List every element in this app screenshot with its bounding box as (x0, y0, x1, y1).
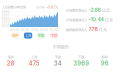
staticText: 3969 (73, 60, 89, 67)
staticText: 2650 (1, 17, 9, 21)
staticText: 亿元 (99, 27, 107, 32)
staticText: 涨跌幅 (36, 5, 45, 9)
staticText: 96 (101, 60, 109, 67)
staticText: 34 (54, 60, 62, 67)
staticText: 融资融券净买入 (66, 28, 87, 32)
staticText: 亿元 (102, 8, 110, 13)
button[interactable]: 上涨 (24, 32, 32, 38)
button[interactable]: 涨停 (11, 32, 19, 38)
staticText: 2620 (1, 24, 9, 28)
staticText: 上涨 (25, 33, 31, 38)
staticText: +0.62% (46, 5, 58, 9)
staticText: 沪深港通净流入 (66, 18, 87, 22)
staticText: 2665 (1, 14, 9, 17)
button[interactable]: 下跌 (50, 32, 58, 38)
staticText: 涨停 (8, 55, 14, 59)
staticText: 下跌 (78, 55, 84, 59)
staticText: 上涨 (31, 55, 37, 59)
button[interactable]: 平盘 (37, 32, 45, 38)
staticText: -10.44 (88, 16, 103, 23)
staticText: 15:00 (50, 28, 58, 32)
staticText: 475 (29, 60, 40, 67)
staticText: 2680 (1, 10, 9, 14)
staticText: 亿元 (105, 17, 113, 22)
staticText: 09:30 (10, 28, 19, 32)
staticText: 上证指数分时走势 (2, 5, 26, 9)
staticText: 10:30 (21, 28, 29, 32)
staticText: -2.66 (88, 7, 100, 13)
staticText: 平盘 (38, 33, 44, 38)
staticText: 跌停 (102, 55, 108, 59)
staticText: 2635 (1, 21, 9, 24)
staticText: 28 (7, 60, 15, 67)
staticText: 下跌 (51, 33, 57, 38)
staticText: 14:00 (40, 28, 48, 32)
staticText: 平盘 (55, 55, 61, 59)
staticText: 涨停 (12, 33, 18, 38)
staticText: 中国股市 (53, 44, 69, 49)
staticText: 沪深两市净流入 (66, 8, 87, 13)
staticText: 11:30 (31, 28, 38, 32)
staticText: 7.78 (88, 26, 97, 32)
